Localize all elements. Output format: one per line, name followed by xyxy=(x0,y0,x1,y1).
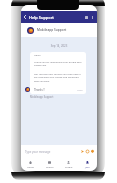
staticText: Jobs xyxy=(85,165,90,168)
staticText: Type your message xyxy=(25,150,51,154)
staticText: Help Support xyxy=(29,15,54,20)
button[interactable]: Location xyxy=(90,149,95,154)
staticText: Thanks !! xyxy=(34,88,45,92)
button[interactable]: Call xyxy=(83,14,89,20)
staticText: Our recruiter will contact you if we hav… xyxy=(34,72,81,82)
staticText: Hello! xyxy=(34,53,41,56)
staticText: Profile xyxy=(65,165,73,168)
button[interactable]: Profile xyxy=(59,158,78,171)
button[interactable]: Home xyxy=(21,158,40,171)
staticText: Sep 14, 2023 xyxy=(21,44,97,48)
button[interactable]: Back xyxy=(21,11,29,23)
staticText: Home xyxy=(27,165,34,168)
staticText: Mobileapp Support xyxy=(37,28,67,32)
button[interactable]: Attach xyxy=(85,149,90,154)
button[interactable]: Jobs xyxy=(78,158,97,171)
staticText: Mobileapp Support xyxy=(30,95,54,99)
staticText: 10:32 xyxy=(77,89,83,92)
button[interactable]: More options xyxy=(90,15,95,20)
staticText: Thank you for registering your profile w… xyxy=(34,60,82,66)
button[interactable]: Send xyxy=(80,149,85,154)
staticText: Search xyxy=(46,165,54,168)
button[interactable]: Search xyxy=(40,158,59,171)
